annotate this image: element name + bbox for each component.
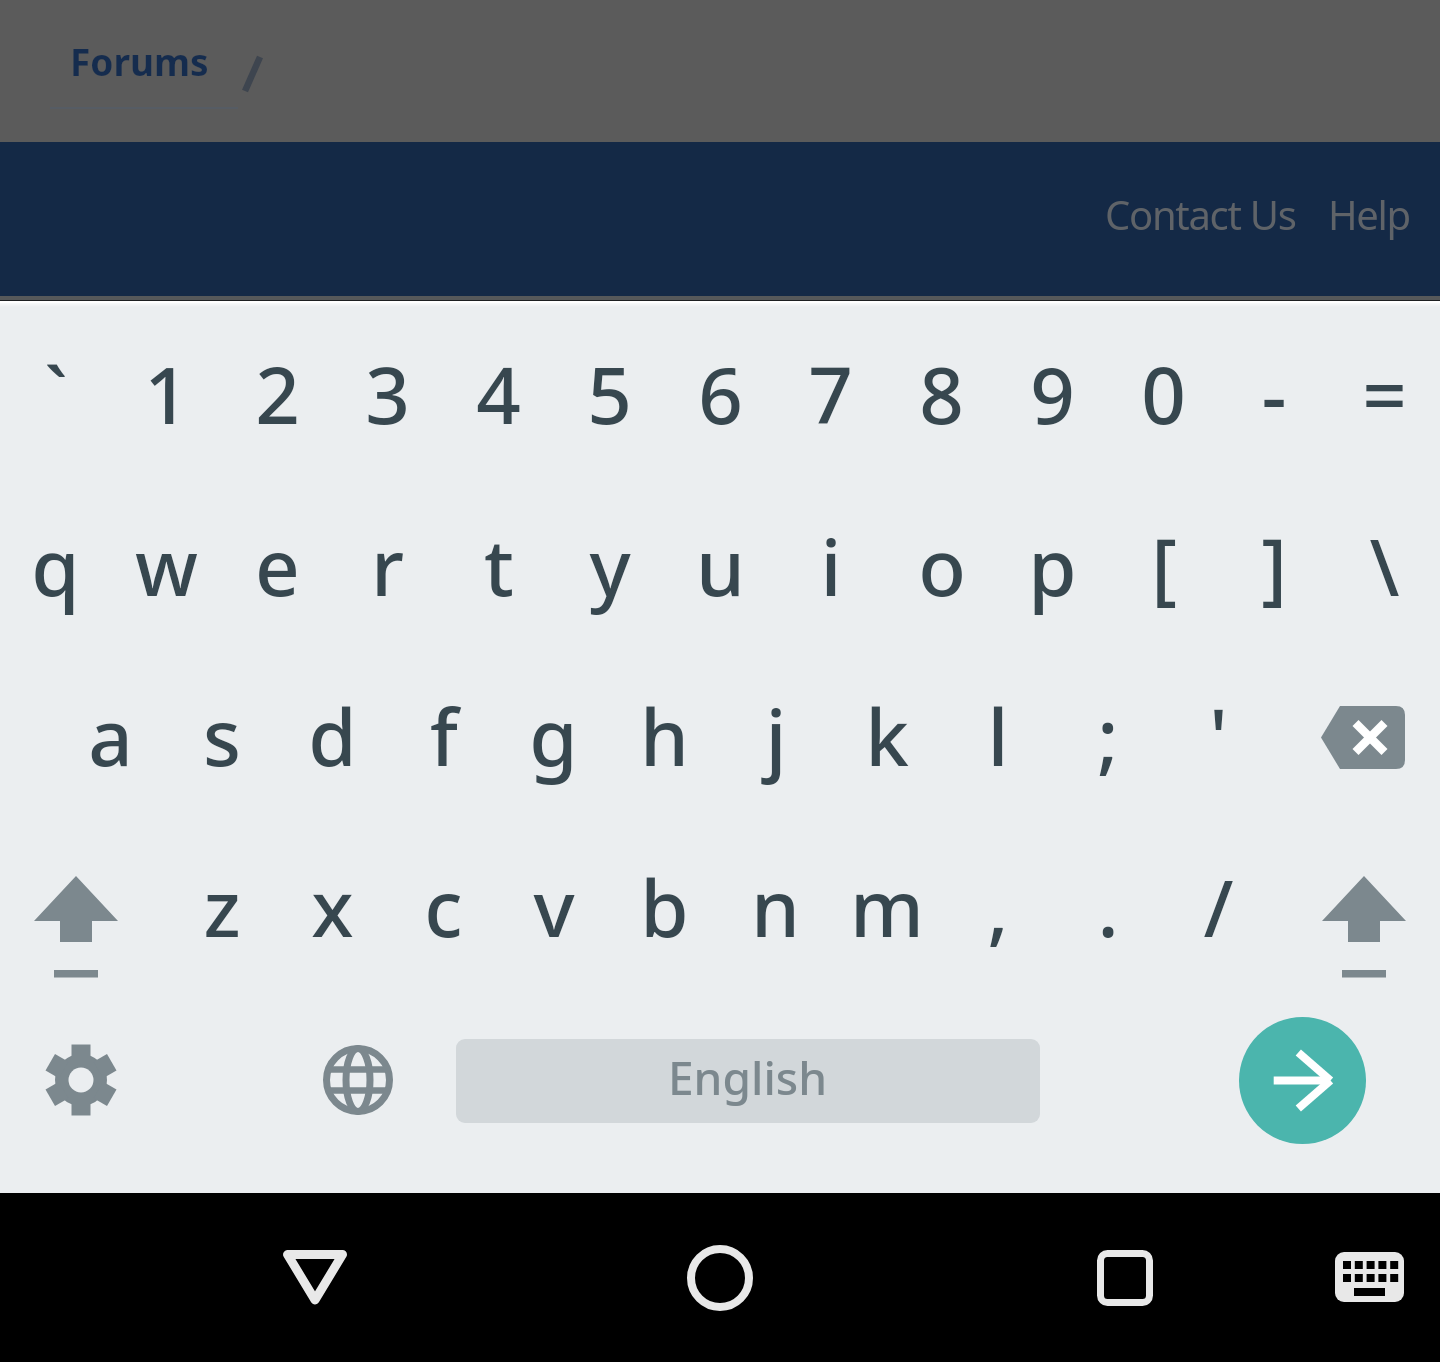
button[interactable]: Settings [36, 1035, 126, 1125]
button[interactable]: \ [1329, 513, 1440, 622]
button[interactable]: English [456, 1039, 1040, 1123]
button[interactable]: ' [1163, 683, 1274, 792]
staticText: s [203, 683, 241, 789]
button[interactable]: v [498, 854, 609, 963]
staticText: z [203, 854, 241, 960]
button[interactable]: [ [1108, 513, 1219, 622]
button[interactable]: n [720, 854, 831, 963]
staticText: c [424, 854, 463, 960]
button[interactable]: l [942, 683, 1053, 792]
button[interactable]: z [166, 854, 277, 963]
button[interactable]: = [1329, 341, 1440, 450]
staticText: ` [44, 341, 68, 447]
button[interactable]: y [554, 513, 665, 622]
button[interactable]: Shift [21, 868, 131, 988]
staticText: i [820, 513, 842, 619]
staticText: Help [1328, 187, 1410, 241]
button[interactable]: s [166, 683, 277, 792]
button[interactable]: w [111, 513, 222, 622]
staticText: 3 [365, 341, 410, 447]
staticText: 0 [1141, 341, 1186, 447]
staticText: w [135, 513, 198, 619]
button[interactable]: g [498, 683, 609, 792]
button[interactable]: ] [1218, 513, 1329, 622]
staticText: 6 [698, 341, 743, 447]
button[interactable]: Forums [70, 30, 210, 92]
staticText: - [1261, 341, 1287, 447]
button[interactable]: / [1163, 854, 1274, 963]
staticText: v [533, 854, 575, 960]
button[interactable]: Enter [1239, 1017, 1366, 1144]
staticText: h [640, 683, 689, 789]
button[interactable]: j [720, 683, 831, 792]
button[interactable]: m [831, 854, 942, 963]
button[interactable]: h [609, 683, 720, 792]
button[interactable]: q [0, 513, 111, 622]
staticText: ; [1097, 683, 1119, 789]
button[interactable]: 5 [554, 341, 665, 450]
button[interactable]: k [831, 683, 942, 792]
button[interactable]: Recent apps [1075, 1228, 1175, 1328]
button[interactable]: Contact Us [1105, 187, 1305, 245]
button[interactable]: r [332, 513, 443, 622]
button[interactable]: Home [670, 1228, 770, 1328]
staticText: . [1097, 854, 1119, 960]
staticText: j [765, 683, 787, 789]
button[interactable]: 3 [332, 341, 443, 450]
staticText: 7 [808, 341, 853, 447]
button[interactable]: 2 [222, 341, 333, 450]
staticText: ] [1261, 513, 1287, 619]
button[interactable]: Backspace [1308, 700, 1418, 780]
staticText: / [1203, 854, 1234, 960]
staticText: p [1028, 513, 1077, 619]
staticText: ' [1209, 683, 1228, 789]
staticText: e [255, 513, 300, 619]
button[interactable]: , [942, 854, 1053, 963]
staticText: 5 [587, 341, 632, 447]
button[interactable]: t [443, 513, 554, 622]
button[interactable]: c [388, 854, 499, 963]
staticText: 4 [476, 341, 521, 447]
staticText: t [484, 513, 514, 619]
button[interactable]: 4 [443, 341, 554, 450]
button[interactable]: Shift [1309, 868, 1419, 988]
staticText: n [751, 854, 800, 960]
button[interactable]: - [1218, 341, 1329, 450]
staticText: g [529, 683, 578, 789]
button[interactable]: 9 [997, 341, 1108, 450]
staticText: q [31, 513, 80, 619]
staticText: x [311, 854, 354, 960]
button[interactable]: b [609, 854, 720, 963]
button[interactable]: 7 [775, 341, 886, 450]
button[interactable]: . [1052, 854, 1163, 963]
button[interactable]: 0 [1108, 341, 1219, 450]
staticText: f [430, 683, 458, 789]
staticText: k [865, 683, 909, 789]
button[interactable]: 6 [665, 341, 776, 450]
button[interactable]: ` [0, 341, 111, 450]
button[interactable]: a [55, 683, 166, 792]
staticText: \ [1369, 513, 1400, 619]
staticText: 8 [919, 341, 964, 447]
button[interactable]: x [277, 854, 388, 963]
staticText: m [850, 854, 924, 960]
button[interactable]: Change language [318, 1040, 398, 1120]
button[interactable]: u [665, 513, 776, 622]
button[interactable]: d [277, 683, 388, 792]
button[interactable]: e [222, 513, 333, 622]
button[interactable]: Switch keyboard [1320, 1238, 1420, 1318]
button[interactable]: o [886, 513, 997, 622]
button[interactable]: i [775, 513, 886, 622]
button[interactable]: 1 [111, 341, 222, 450]
button[interactable]: Back [265, 1228, 365, 1328]
staticText: Contact Us [1105, 187, 1296, 241]
button[interactable]: 8 [886, 341, 997, 450]
staticText: l [987, 683, 1009, 789]
button[interactable]: p [997, 513, 1108, 622]
button[interactable]: f [388, 683, 499, 792]
button[interactable]: ; [1052, 683, 1163, 792]
staticText: , [987, 854, 1009, 960]
staticText: 1 [144, 341, 189, 447]
button[interactable]: Help [1328, 187, 1418, 245]
staticText: r [371, 513, 404, 619]
